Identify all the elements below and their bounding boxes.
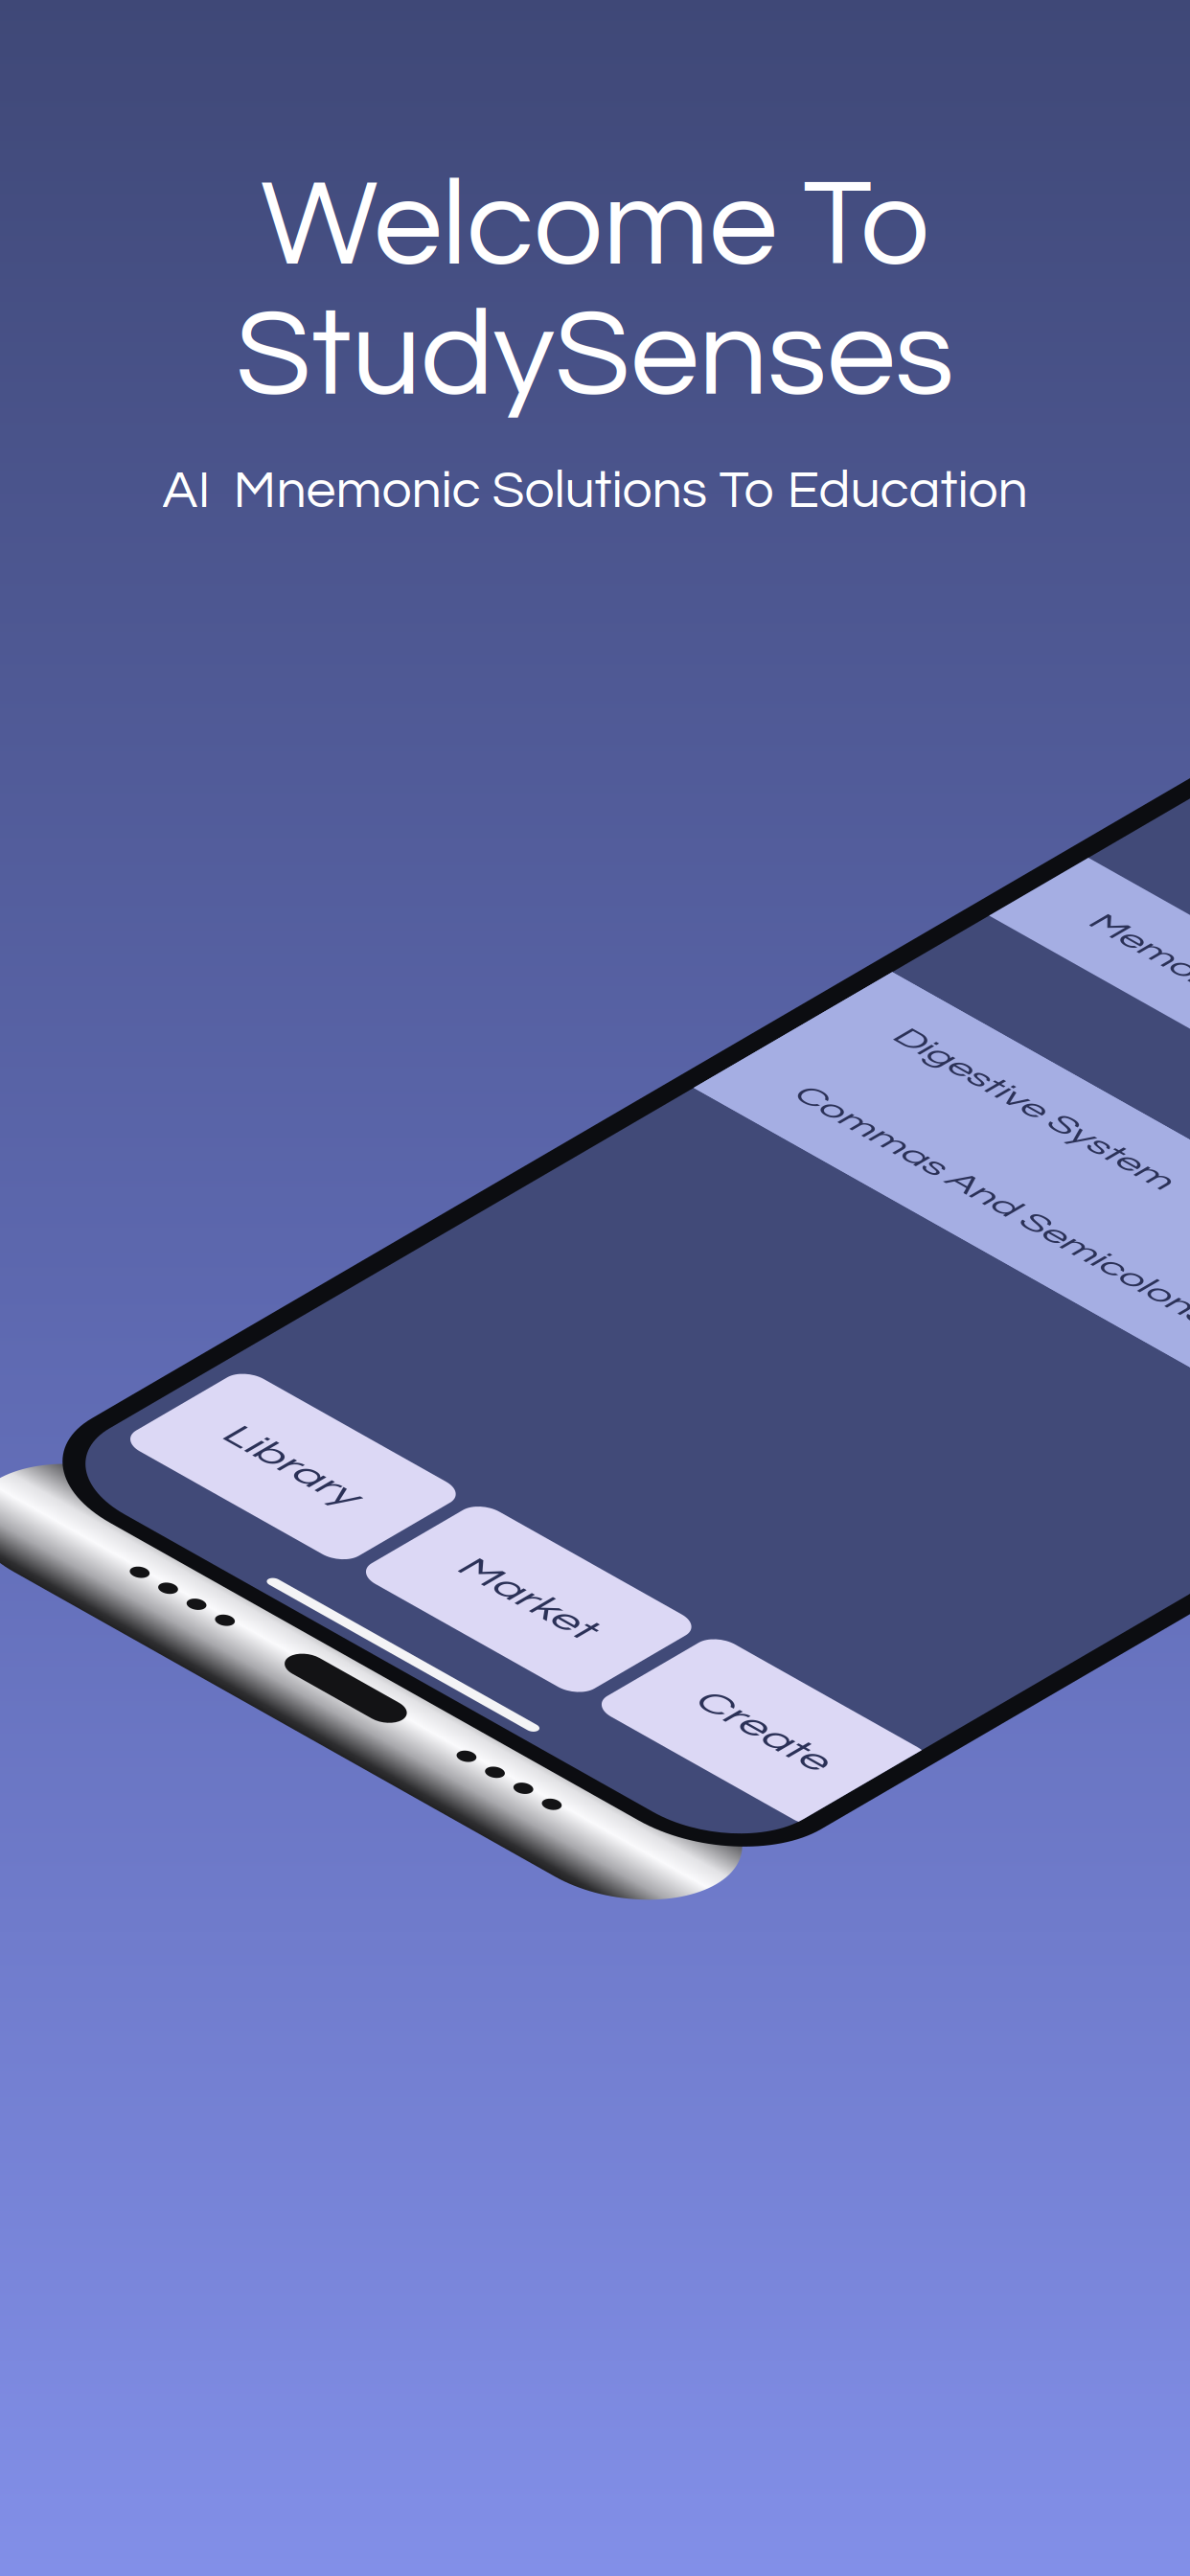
button[interactable]: Library [58, 2211, 419, 2456]
staticText: AI Mnemonic Solutions To Education [162, 464, 1028, 518]
button[interactable]: Digestive System [34, 897, 1156, 1093]
button[interactable]: Create [821, 2211, 1181, 2456]
button[interactable]: Market [440, 2211, 800, 2456]
staticText: Welcome To [261, 163, 929, 289]
staticText: StudySenses [236, 293, 954, 419]
button[interactable]: Commas And Semicolons [34, 1093, 1156, 1290]
staticText: Commas And Semicolons [125, 1162, 786, 1221]
